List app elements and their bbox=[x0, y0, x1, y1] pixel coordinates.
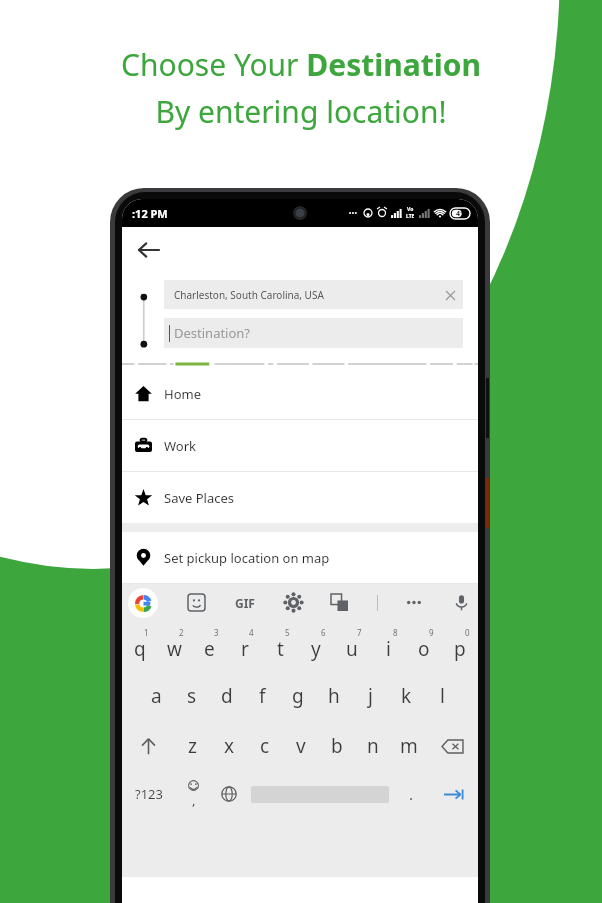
staticText: 5 bbox=[285, 627, 290, 638]
button[interactable]: z bbox=[174, 721, 211, 771]
button[interactable]: l bbox=[424, 671, 460, 721]
button[interactable]: v bbox=[283, 721, 319, 771]
staticText: d bbox=[221, 683, 233, 709]
button[interactable]: Save Places bbox=[122, 472, 478, 523]
button[interactable]: n bbox=[355, 721, 391, 771]
staticText: 8 bbox=[393, 627, 398, 638]
staticText: w bbox=[167, 636, 182, 662]
staticText: Charleston, South Carolina, USA bbox=[174, 288, 437, 302]
button[interactable]: 0 bbox=[442, 621, 478, 671]
button[interactable]: Change language bbox=[211, 771, 246, 817]
staticText: LTE bbox=[406, 213, 415, 220]
button[interactable]: Emoji bbox=[176, 771, 211, 817]
staticText: c bbox=[260, 733, 270, 759]
staticText: Home bbox=[164, 385, 201, 403]
staticText: Work bbox=[164, 437, 197, 455]
staticText: h bbox=[328, 683, 340, 709]
staticText: g bbox=[292, 683, 304, 709]
button[interactable]: Set pickup location on map bbox=[122, 532, 478, 583]
staticText: 41 bbox=[456, 209, 465, 219]
button[interactable]: m bbox=[391, 721, 427, 771]
button[interactable]: a bbox=[139, 671, 174, 721]
staticText: k bbox=[401, 683, 412, 709]
staticText: 1 bbox=[144, 627, 149, 638]
staticText: . bbox=[409, 784, 414, 804]
button[interactable]: b bbox=[319, 721, 355, 771]
staticText: f bbox=[259, 683, 266, 709]
staticText: p bbox=[454, 636, 466, 662]
button[interactable]: j bbox=[352, 671, 388, 721]
button[interactable]: 5 bbox=[262, 621, 298, 671]
staticText: t bbox=[277, 636, 284, 662]
button[interactable]: c bbox=[247, 721, 283, 771]
staticText: 9 bbox=[429, 627, 434, 638]
button[interactable]: f bbox=[244, 671, 280, 721]
button[interactable]: Next bbox=[429, 771, 478, 817]
button[interactable]: d bbox=[209, 671, 244, 721]
button[interactable] bbox=[246, 771, 394, 817]
button[interactable]: Google bbox=[128, 588, 158, 618]
staticText: 4 bbox=[249, 627, 254, 638]
staticText: Set pickup location on map bbox=[164, 549, 330, 567]
staticText: j bbox=[368, 683, 373, 709]
button[interactable]: Charleston, South Carolina, USA bbox=[164, 280, 463, 309]
staticText: ?123 bbox=[135, 785, 163, 803]
staticText: v bbox=[296, 733, 306, 759]
button[interactable]: Shift bbox=[122, 721, 174, 771]
staticText: i bbox=[386, 636, 391, 662]
staticText: 0 bbox=[465, 627, 470, 638]
staticText: Vo bbox=[407, 206, 414, 213]
button[interactable]: 7 bbox=[334, 621, 370, 671]
staticText: Choose Your Destination bbox=[121, 44, 481, 85]
button[interactable]: 3 bbox=[192, 621, 227, 671]
button[interactable]: k bbox=[388, 671, 424, 721]
button[interactable]: Destination? bbox=[164, 318, 463, 348]
button[interactable]: Backspace bbox=[427, 721, 478, 771]
button[interactable]: g bbox=[280, 671, 316, 721]
button[interactable]: h bbox=[316, 671, 352, 721]
button[interactable]: s bbox=[174, 671, 209, 721]
button[interactable]: Home bbox=[122, 368, 478, 419]
staticText: 2 bbox=[179, 627, 184, 638]
other: More bbox=[407, 600, 424, 605]
staticText: m bbox=[400, 733, 418, 759]
staticText: r bbox=[241, 636, 249, 662]
staticText: l bbox=[440, 683, 445, 709]
staticText: a bbox=[151, 683, 162, 709]
staticText: u bbox=[346, 636, 358, 662]
staticText: Destination? bbox=[174, 324, 251, 342]
staticText: Save Places bbox=[164, 489, 235, 507]
staticText: 7 bbox=[357, 627, 362, 638]
button[interactable]: 6 bbox=[298, 621, 334, 671]
button[interactable]: 4 bbox=[227, 621, 262, 671]
staticText: n bbox=[367, 733, 379, 759]
button[interactable]: Work bbox=[122, 420, 478, 471]
staticText: :12 PM bbox=[132, 206, 168, 221]
staticText: e bbox=[204, 636, 215, 662]
button[interactable]: ?123 bbox=[122, 771, 176, 817]
staticText: x bbox=[224, 733, 235, 759]
staticText: y bbox=[311, 636, 321, 662]
button[interactable]: Back bbox=[130, 232, 166, 268]
button[interactable]: 1 bbox=[122, 621, 157, 671]
button[interactable]: 8 bbox=[370, 621, 406, 671]
button[interactable]: 9 bbox=[406, 621, 442, 671]
button[interactable]: x bbox=[211, 721, 247, 771]
button[interactable]: Clear bbox=[437, 282, 463, 308]
staticText: GIF bbox=[235, 595, 255, 611]
staticText: 6 bbox=[321, 627, 326, 638]
staticText: 3 bbox=[214, 627, 219, 638]
button[interactable]: . bbox=[394, 771, 429, 817]
staticText: q bbox=[134, 636, 146, 662]
staticText: s bbox=[187, 683, 197, 709]
staticText: By entering location! bbox=[155, 91, 447, 132]
staticText: , bbox=[192, 791, 196, 809]
staticText: z bbox=[188, 733, 197, 759]
staticText: o bbox=[418, 636, 430, 662]
button[interactable]: 2 bbox=[157, 621, 192, 671]
staticText: b bbox=[331, 733, 343, 759]
